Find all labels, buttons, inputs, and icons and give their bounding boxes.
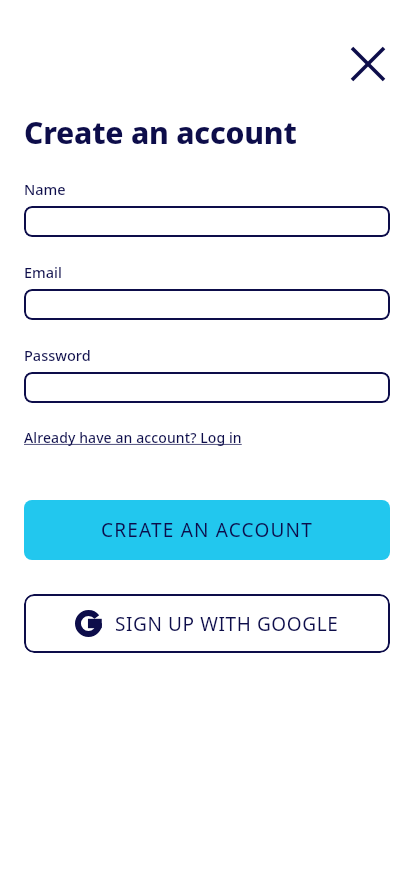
staticText: Already have an account? Log in — [24, 428, 242, 447]
button[interactable]: Close — [344, 40, 392, 88]
button[interactable]: CREATE AN ACCOUNT — [24, 500, 390, 560]
button[interactable]: Email — [24, 289, 390, 320]
button[interactable]: Already have an account? Log in — [24, 428, 242, 447]
staticText: Name — [24, 179, 66, 199]
button[interactable]: SIGN UP WITH GOOGLE — [24, 594, 390, 653]
button[interactable]: Password — [24, 372, 390, 403]
staticText: CREATE AN ACCOUNT — [101, 517, 313, 543]
staticText: SIGN UP WITH GOOGLE — [115, 611, 339, 637]
staticText: Email — [24, 262, 62, 282]
staticText: Password — [24, 345, 91, 365]
button[interactable]: Name — [24, 206, 390, 237]
staticText: Create an account — [24, 112, 297, 153]
